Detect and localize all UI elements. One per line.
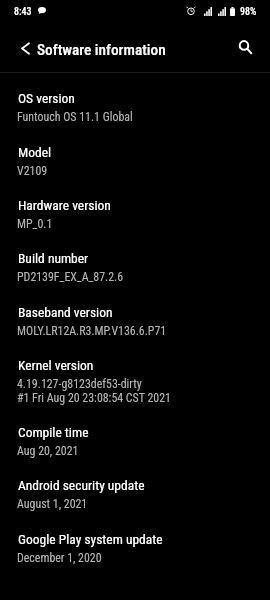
staticText: Baseband version	[18, 304, 113, 320]
button[interactable]: Compile time	[0, 420, 270, 473]
staticText: Google Play system update	[18, 531, 163, 547]
staticText: 4.19.127-g8123def53-dirty	[17, 377, 142, 391]
staticText: OS version	[18, 90, 75, 106]
staticText: Software information	[37, 41, 166, 59]
staticText: Hardware version	[18, 197, 111, 213]
button[interactable]: Build number	[0, 246, 270, 299]
staticText: MP_0.1	[17, 217, 53, 231]
staticText: V2109	[17, 164, 48, 178]
staticText: 98%	[240, 6, 257, 18]
button[interactable]: Hardware version	[0, 193, 270, 246]
button[interactable]: Search	[230, 32, 258, 60]
button[interactable]: Baseband version	[0, 300, 270, 353]
button[interactable]: Google Play system update	[0, 527, 270, 580]
staticText: 8:43	[14, 6, 32, 18]
staticText: August 1, 2021	[17, 497, 88, 511]
staticText: Compile time	[18, 424, 89, 440]
staticText: December 1, 2020	[17, 551, 102, 565]
button[interactable]: Back	[11, 34, 39, 62]
button[interactable]: OS version	[0, 86, 270, 139]
staticText: Funtouch OS 11.1 Global	[17, 110, 133, 124]
staticText: Model	[18, 144, 52, 160]
staticText: PD2139F_EX_A_87.2.6	[17, 270, 124, 284]
button[interactable]: Android security update	[0, 473, 270, 526]
staticText: Kernel version	[18, 357, 94, 373]
staticText: Android security update	[18, 477, 145, 493]
button[interactable]: Kernel version	[0, 353, 270, 420]
staticText: #1 Fri Aug 20 23:08:54 CST 2021	[17, 391, 171, 405]
button[interactable]: Model	[0, 140, 270, 193]
staticText: MOLY.LR12A.R3.MP.V136.6.P71	[17, 324, 167, 338]
staticText: Aug 20, 2021	[17, 444, 79, 458]
staticText: Build number	[18, 250, 89, 266]
